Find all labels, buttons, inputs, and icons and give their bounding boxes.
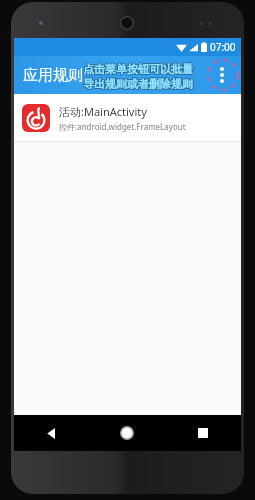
staticText: 导出规则或者删除规则 — [84, 77, 194, 91]
staticText: 导出规则或者删除规则 — [84, 78, 194, 92]
button[interactable]: More options — [205, 58, 239, 92]
staticText: 点击菜单按钮可以批量 — [84, 62, 194, 76]
staticText: 07:00 — [210, 40, 236, 54]
staticText: 点击菜单按钮可以批量 — [82, 61, 192, 75]
staticText: 点击菜单按钮可以批量 — [84, 63, 194, 77]
staticText: 点击菜单按钮可以批量 — [83, 62, 193, 76]
staticText: 导出规则或者删除规则 — [83, 78, 193, 92]
button[interactable]: Home — [89, 415, 165, 451]
staticText: 点击菜单按钮可以批量 — [83, 63, 193, 77]
staticText: 导出规则或者删除规则 — [84, 76, 194, 90]
staticText: 应用规则 — [23, 66, 83, 85]
staticText: 导出规则或者删除规则 — [82, 76, 192, 90]
staticText: 活动:MainActivity — [59, 104, 147, 119]
button[interactable]: 活动:MainActivity — [14, 94, 241, 141]
staticText: 导出规则或者删除规则 — [82, 78, 192, 92]
staticText: 点击菜单按钮可以批量 — [84, 61, 194, 75]
button[interactable]: Back — [14, 415, 89, 451]
staticText: 导出规则或者删除规则 — [82, 77, 192, 91]
button[interactable]: Recent apps — [165, 415, 241, 451]
staticText: 导出规则或者删除规则 — [83, 77, 193, 91]
staticText: 导出规则或者删除规则 — [83, 76, 193, 90]
staticText: 控件:android.widget.FrameLayout — [59, 121, 186, 132]
staticText: 点击菜单按钮可以批量 — [83, 61, 193, 75]
staticText: 点击菜单按钮可以批量 — [82, 63, 192, 77]
staticText: 点击菜单按钮可以批量 — [82, 62, 192, 76]
